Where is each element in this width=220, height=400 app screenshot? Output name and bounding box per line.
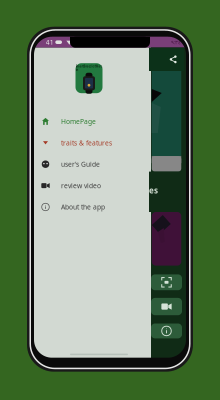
staticText: traits & features [61, 138, 112, 147]
staticText: HomePage [61, 117, 96, 126]
button[interactable]: user's Guide [34, 153, 151, 175]
button[interactable]: Scan [151, 274, 182, 290]
button[interactable]: About the app [34, 196, 151, 218]
staticText: SmartBraceletWatch [75, 65, 102, 72]
staticText: About the app [61, 203, 105, 211]
button[interactable]: About [151, 323, 182, 338]
button[interactable]: Share [166, 53, 179, 66]
staticText: ٩:٣٤ [171, 39, 181, 46]
button[interactable]: HomePage [34, 111, 151, 132]
staticText: es [149, 185, 158, 196]
button[interactable]: Video [151, 298, 182, 315]
button[interactable]: traits & features [34, 132, 151, 153]
button[interactable]: review video [34, 175, 151, 196]
staticText: user's Guide [61, 160, 100, 169]
staticText: 41 [46, 38, 54, 47]
staticText: review video [61, 181, 101, 190]
